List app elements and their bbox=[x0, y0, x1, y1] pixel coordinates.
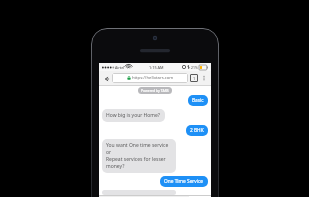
staticText: Basic bbox=[192, 97, 204, 104]
button[interactable]: Powered by TARS bbox=[141, 88, 169, 93]
button[interactable]: Back bbox=[102, 74, 111, 83]
staticText: 21% bbox=[191, 65, 198, 70]
staticText: How big is your Home? bbox=[106, 112, 161, 119]
button[interactable]: Basic bbox=[188, 95, 208, 106]
button[interactable]: One Time Service bbox=[160, 176, 208, 187]
button[interactable]: Tabs bbox=[190, 74, 198, 82]
staticText: Airtel bbox=[115, 65, 125, 70]
button[interactable]: https://hellotars.com bbox=[112, 73, 188, 83]
staticText: Powered by TARS bbox=[141, 88, 169, 93]
staticText: One Time Service bbox=[164, 178, 204, 185]
staticText: 2 BHK bbox=[190, 127, 204, 134]
staticText: https://hellotars.com bbox=[132, 75, 174, 81]
staticText: 1 bbox=[193, 76, 196, 81]
button[interactable]: 2 BHK bbox=[186, 125, 208, 136]
button[interactable]: You want One time service or Repeat serv… bbox=[102, 139, 176, 173]
button[interactable]: How big is your Home? bbox=[102, 109, 165, 122]
staticText: You want One time service or Repeat serv… bbox=[106, 142, 172, 170]
staticText: 1:15 AM bbox=[149, 65, 164, 70]
button[interactable]: More options bbox=[200, 74, 208, 82]
